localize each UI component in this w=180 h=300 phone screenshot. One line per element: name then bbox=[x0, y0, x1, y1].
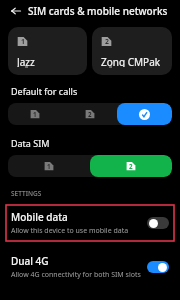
button[interactable] bbox=[147, 217, 169, 229]
staticText: Zong CMPak bbox=[101, 55, 161, 67]
staticText: 1 bbox=[47, 162, 51, 170]
staticText: SETTINGS bbox=[11, 189, 42, 198]
staticText: 1 bbox=[33, 110, 37, 118]
staticText: Allow this device to use mobile data bbox=[11, 226, 129, 236]
button[interactable]: SIM 1 for calls bbox=[8, 103, 62, 125]
staticText: Jazz bbox=[17, 55, 35, 67]
button[interactable]: SIM 2 for calls bbox=[62, 103, 117, 125]
staticText: SIM cards & mobile networks bbox=[28, 4, 168, 18]
staticText: Allow 4G connectivity for both SIM slots bbox=[11, 270, 141, 280]
staticText: 2 bbox=[105, 37, 109, 46]
staticText: Data SIM bbox=[11, 137, 50, 149]
staticText: 2 bbox=[129, 162, 133, 170]
staticText: Default for calls bbox=[11, 85, 78, 97]
button[interactable]: 2 bbox=[92, 27, 172, 75]
button[interactable] bbox=[147, 261, 169, 273]
button[interactable]: Mobile data bbox=[6, 205, 174, 241]
button[interactable]: SIM 2 for data bbox=[90, 155, 172, 177]
staticText: Dual 4G bbox=[11, 254, 49, 268]
staticText: 1 bbox=[21, 37, 25, 46]
staticText: 2 bbox=[88, 110, 92, 118]
button[interactable]: Always ask for calls bbox=[117, 103, 172, 125]
button[interactable]: SIM 1 for data bbox=[8, 155, 90, 177]
button[interactable]: Back bbox=[9, 4, 23, 18]
staticText: Mobile data bbox=[11, 210, 68, 224]
button[interactable]: 1 bbox=[8, 27, 87, 75]
button[interactable]: Dual 4G bbox=[6, 249, 174, 285]
